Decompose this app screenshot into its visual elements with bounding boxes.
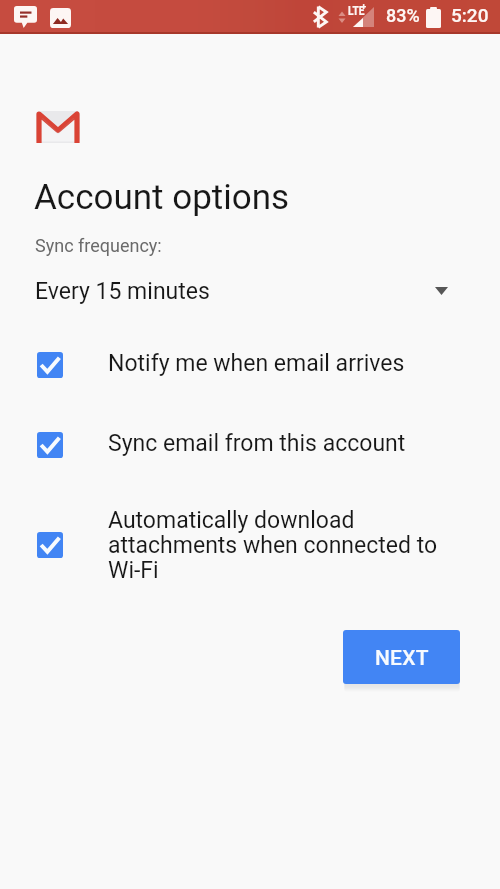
staticText: Automatically download attachments when …	[108, 508, 438, 578]
button[interactable]: Notify me when email arrives	[0, 345, 500, 415]
button[interactable]: NEXT	[343, 630, 460, 684]
staticText: Sync frequency:	[35, 235, 162, 256]
staticText: Notify me when email arrives	[108, 351, 405, 376]
button[interactable]: Automatically download attachments when …	[0, 500, 500, 570]
staticText: Sync email from this account	[108, 431, 406, 456]
staticText: +	[361, 1, 367, 12]
staticText: 83%	[386, 5, 420, 26]
staticText: NEXT	[375, 646, 429, 671]
staticText: LTE	[348, 3, 365, 18]
staticText: Account options	[34, 177, 290, 218]
staticText: Every 15 minutes	[35, 278, 210, 305]
staticText: 5:20	[451, 4, 489, 26]
button[interactable]: Every 15 minutes	[0, 270, 500, 310]
button[interactable]: Sync email from this account	[0, 425, 500, 495]
